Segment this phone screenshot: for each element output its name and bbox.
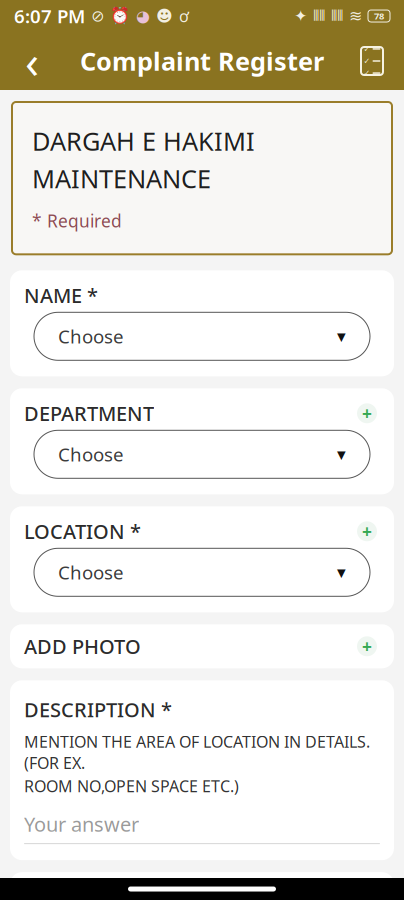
staticText: Choose <box>58 560 124 585</box>
staticText: ⏰ <box>110 7 130 25</box>
button[interactable]: Add <box>354 400 380 426</box>
button[interactable]: Back <box>6 35 58 87</box>
staticText: ‹ <box>25 31 39 91</box>
staticText: DARGAH E HAKIMI <box>32 124 255 158</box>
staticText: ⦀⦀ <box>331 9 343 23</box>
staticText: MENTION THE AREA OF LOCATION IN DETAILS.… <box>24 731 370 773</box>
staticText: NAME * <box>24 282 98 309</box>
staticText: Choose <box>58 324 124 349</box>
staticText: 78 <box>374 10 384 22</box>
staticText: DEPARTMENT <box>24 400 154 427</box>
staticText: ⦀⦀ <box>313 9 325 23</box>
staticText: ✓ <box>363 56 370 66</box>
staticText: ▾ <box>337 326 346 346</box>
staticText: ▾ <box>337 444 346 464</box>
staticText: Choose <box>58 442 124 467</box>
staticText: ✓ <box>363 44 370 53</box>
staticText: WORK PRIORITY * <box>24 890 197 900</box>
button[interactable]: Choose <box>34 548 370 596</box>
button[interactable]: Choose <box>34 430 370 478</box>
staticText: Your answer <box>24 811 139 837</box>
button[interactable]: Complaint list <box>346 35 398 87</box>
staticText: * Required <box>32 209 122 232</box>
staticText: DESCRIPTION * <box>24 696 172 723</box>
staticText: ⊘ <box>91 7 104 25</box>
staticText: + <box>362 402 372 425</box>
button[interactable]: Your answer <box>24 811 380 844</box>
staticText: + <box>362 635 372 658</box>
staticText: ◕ <box>136 7 150 25</box>
staticText: + <box>362 520 372 543</box>
button[interactable]: Choose <box>34 312 370 360</box>
staticText: 6:07 PM <box>14 4 85 28</box>
staticText: ▾ <box>337 562 346 582</box>
button[interactable]: Add <box>354 518 380 544</box>
staticText: MAINTENANCE <box>32 162 211 195</box>
staticText: ≋ <box>349 7 362 25</box>
button[interactable]: Add <box>354 633 380 659</box>
staticText: ✦ <box>294 7 307 25</box>
staticText: Complaint Register <box>80 44 324 78</box>
staticText: ơ <box>179 5 189 27</box>
staticText: ROOM NO,OPEN SPACE ETC.) <box>24 775 239 797</box>
staticText: ✓ <box>363 68 370 78</box>
staticText: ☻ <box>156 7 173 25</box>
staticText: LOCATION * <box>24 518 141 545</box>
staticText: ADD PHOTO <box>24 633 141 660</box>
